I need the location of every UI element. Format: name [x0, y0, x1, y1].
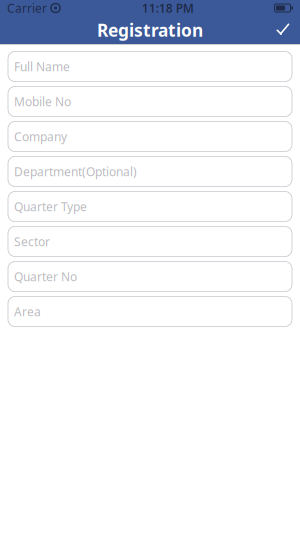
staticText: Company [14, 128, 67, 144]
button[interactable]: Mobile No [8, 86, 292, 116]
button[interactable]: Company [8, 121, 292, 151]
staticText: Sector [14, 233, 50, 249]
staticText: Area [14, 303, 41, 319]
staticText: Carrier [7, 0, 47, 16]
button[interactable]: Save registration [266, 16, 300, 44]
button[interactable]: Full Name [8, 51, 292, 81]
staticText: Mobile No [14, 93, 71, 109]
button[interactable]: Area [8, 296, 292, 326]
staticText: 11:18 PM [142, 0, 194, 16]
staticText: Department(Optional) [14, 163, 137, 179]
staticText: Full Name [14, 58, 70, 74]
button[interactable]: Sector [8, 226, 292, 256]
button[interactable]: Quarter Type [8, 191, 292, 221]
staticText: Quarter No [14, 268, 77, 284]
staticText: Registration [97, 18, 203, 41]
button[interactable]: Quarter No [8, 261, 292, 291]
staticText: Quarter Type [14, 198, 87, 214]
button[interactable]: Department(Optional) [8, 156, 292, 186]
